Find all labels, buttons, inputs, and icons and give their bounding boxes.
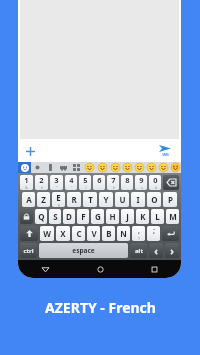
staticText: 6 bbox=[97, 175, 102, 185]
staticText: B bbox=[106, 228, 112, 239]
staticText: ctrl bbox=[23, 247, 34, 255]
button[interactable]: J bbox=[121, 209, 134, 224]
button[interactable]: Category 2 bbox=[44, 162, 57, 173]
button[interactable]: E bbox=[52, 192, 65, 207]
button[interactable]: P bbox=[163, 192, 177, 207]
staticText: 8 bbox=[125, 175, 130, 185]
staticText: alt bbox=[135, 247, 143, 255]
button[interactable]: Emoji 6 bbox=[145, 162, 157, 173]
staticText: SMS bbox=[162, 153, 169, 157]
button[interactable]: Enter bbox=[162, 226, 179, 241]
button[interactable]: N bbox=[117, 226, 130, 241]
button[interactable]: H bbox=[106, 209, 119, 224]
button[interactable]: 7 bbox=[107, 175, 119, 190]
staticText: G bbox=[95, 211, 101, 222]
button[interactable]: Category 1 bbox=[31, 162, 44, 173]
button[interactable]: Emoji 5 bbox=[133, 162, 145, 173]
staticText: à bbox=[155, 185, 157, 190]
button[interactable]: Emoji 2 bbox=[96, 162, 109, 173]
staticText: Y bbox=[103, 194, 109, 205]
button[interactable]: D bbox=[63, 209, 75, 224]
button[interactable]: Add attachment bbox=[22, 143, 38, 159]
button[interactable]: Emoji 3 bbox=[109, 162, 121, 173]
button[interactable]: espace bbox=[39, 243, 128, 258]
button[interactable]: C bbox=[72, 226, 85, 241]
button[interactable]: L bbox=[151, 209, 164, 224]
staticText: - bbox=[99, 185, 101, 190]
staticText: 0 bbox=[153, 175, 158, 185]
button[interactable]: Z bbox=[37, 192, 50, 207]
button[interactable]: 1 bbox=[20, 175, 33, 190]
staticText: C bbox=[76, 228, 82, 239]
button[interactable]: T bbox=[83, 192, 97, 207]
button[interactable]: X bbox=[56, 226, 70, 241]
staticText: espace bbox=[72, 246, 95, 255]
staticText: H bbox=[109, 211, 116, 222]
staticText: 3 bbox=[54, 175, 59, 185]
staticText: K bbox=[140, 211, 146, 222]
button[interactable]: Send SMS bbox=[153, 144, 177, 157]
staticText: S bbox=[53, 211, 58, 222]
button[interactable]: Previous bbox=[149, 243, 163, 258]
button[interactable]: Y bbox=[99, 192, 113, 207]
button[interactable]: I bbox=[131, 192, 145, 207]
staticText: V bbox=[91, 228, 97, 239]
button[interactable]: 9 bbox=[135, 175, 147, 190]
button[interactable]: Caps lock bbox=[20, 209, 33, 224]
button[interactable]: 3 bbox=[50, 175, 63, 190]
button[interactable]: B bbox=[102, 226, 115, 241]
button[interactable]: F bbox=[77, 209, 89, 224]
button[interactable]: Emoji keyboard bbox=[18, 162, 31, 173]
button[interactable]: U bbox=[115, 192, 129, 207]
button[interactable]: 6 bbox=[93, 175, 105, 190]
staticText: AZERTY - French bbox=[45, 298, 156, 317]
button[interactable]: 0 bbox=[149, 175, 161, 190]
button[interactable]: M bbox=[166, 209, 179, 224]
button[interactable]: R bbox=[67, 192, 81, 207]
button[interactable]: Backspace bbox=[163, 175, 179, 190]
staticText: L bbox=[155, 211, 160, 222]
staticText: ; bbox=[153, 226, 155, 236]
button[interactable]: 4 bbox=[65, 175, 77, 190]
button[interactable]: Category 4 bbox=[70, 162, 83, 173]
staticText: 7 bbox=[111, 175, 116, 185]
button[interactable]: Emoji 4 bbox=[121, 162, 133, 173]
button[interactable]: 5 bbox=[79, 175, 91, 190]
button[interactable]: Next bbox=[165, 243, 179, 258]
staticText: Z bbox=[41, 194, 46, 205]
button[interactable]: Shift bbox=[20, 226, 38, 241]
button[interactable]: Back bbox=[18, 260, 73, 278]
button[interactable]: ; bbox=[147, 226, 160, 241]
staticText: P bbox=[168, 194, 173, 205]
button[interactable]: A bbox=[22, 192, 35, 207]
staticText: J bbox=[126, 211, 129, 222]
button[interactable]: 8 bbox=[121, 175, 133, 190]
button[interactable]: alt bbox=[130, 243, 147, 258]
button[interactable]: V bbox=[87, 226, 100, 241]
staticText: X bbox=[60, 228, 66, 239]
button[interactable]: Emoji 7 bbox=[157, 162, 169, 173]
button[interactable]: , bbox=[132, 226, 145, 241]
button[interactable]: K bbox=[136, 209, 149, 224]
staticText: I bbox=[136, 194, 140, 205]
staticText: A bbox=[26, 194, 32, 205]
button[interactable]: Category 3 bbox=[57, 162, 70, 173]
button[interactable]: 2 bbox=[35, 175, 48, 190]
button[interactable]: Emoji 8 bbox=[169, 162, 181, 173]
staticText: M bbox=[169, 211, 177, 222]
button[interactable]: O bbox=[147, 192, 161, 207]
staticText: O bbox=[151, 194, 158, 205]
button[interactable]: Emoji 1 bbox=[83, 162, 96, 173]
staticText: € bbox=[58, 203, 60, 207]
button[interactable]: G bbox=[91, 209, 104, 224]
button[interactable]: S bbox=[49, 209, 61, 224]
button[interactable]: Home bbox=[73, 260, 127, 278]
button[interactable]: W bbox=[40, 226, 54, 241]
staticText: 9 bbox=[139, 175, 144, 185]
button[interactable]: Recents bbox=[127, 260, 181, 278]
staticText: E bbox=[56, 192, 61, 203]
button[interactable]: ctrl bbox=[20, 243, 37, 258]
staticText: R bbox=[71, 194, 77, 205]
staticText: U bbox=[119, 194, 126, 205]
button[interactable]: Q bbox=[35, 209, 47, 224]
